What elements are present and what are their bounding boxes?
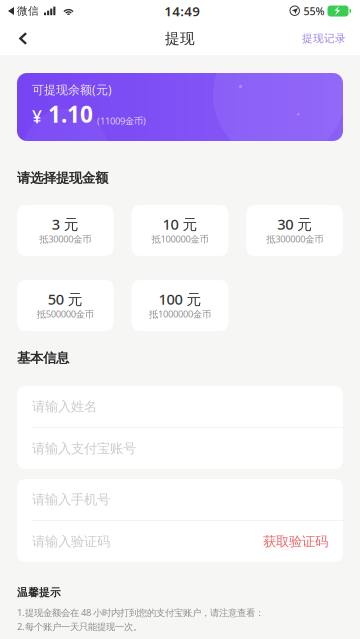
staticText: 1.提现金额会在 48 小时内打到您的支付宝账户，请注意查看：: [17, 606, 264, 619]
staticText: 抵500000金币: [37, 308, 94, 320]
staticText: 3 元: [52, 214, 79, 234]
staticText: 请输入验证码: [32, 533, 110, 550]
staticText: 请输入支付宝账号: [32, 440, 136, 457]
staticText: 请输入姓名: [32, 398, 97, 415]
button[interactable]: 30 元: [246, 205, 343, 256]
staticText: 抵300000金币: [266, 233, 323, 245]
staticText: 抵1000000金币: [149, 308, 211, 320]
staticText: 温馨提示: [17, 586, 61, 599]
staticText: 提现记录: [302, 32, 346, 45]
staticText: 请输入手机号: [32, 491, 110, 508]
staticText: (11009金币): [93, 115, 146, 127]
staticText: 50 元: [48, 289, 83, 309]
staticText: 1.10: [42, 99, 93, 129]
staticText: 14:49: [164, 2, 200, 20]
staticText: 100 元: [158, 289, 201, 309]
button[interactable]: 3 元: [17, 205, 114, 256]
button[interactable]: 50 元: [17, 280, 114, 331]
staticText: 10 元: [162, 214, 197, 234]
staticText: 微信: [17, 4, 39, 17]
button[interactable]: Back: [0, 22, 40, 54]
staticText: 抵30000金币: [39, 233, 91, 245]
button[interactable]: 获取验证码: [263, 533, 328, 550]
button[interactable]: 100 元: [132, 280, 228, 331]
button[interactable]: 10 元: [132, 205, 228, 256]
staticText: 30 元: [277, 214, 312, 234]
staticText: 抵100000金币: [151, 233, 208, 245]
staticText: 可提现余额(元): [32, 81, 112, 97]
staticText: ¥: [32, 105, 42, 128]
staticText: 基本信息: [17, 350, 69, 366]
staticText: 提现: [165, 29, 195, 47]
button[interactable]: 提现记录: [290, 23, 360, 54]
staticText: 55%: [303, 4, 324, 18]
staticText: 获取验证码: [263, 533, 328, 550]
staticText: 2.每个账户一天只能提现一次。: [17, 620, 142, 633]
staticText: 请选择提现金额: [17, 170, 108, 186]
